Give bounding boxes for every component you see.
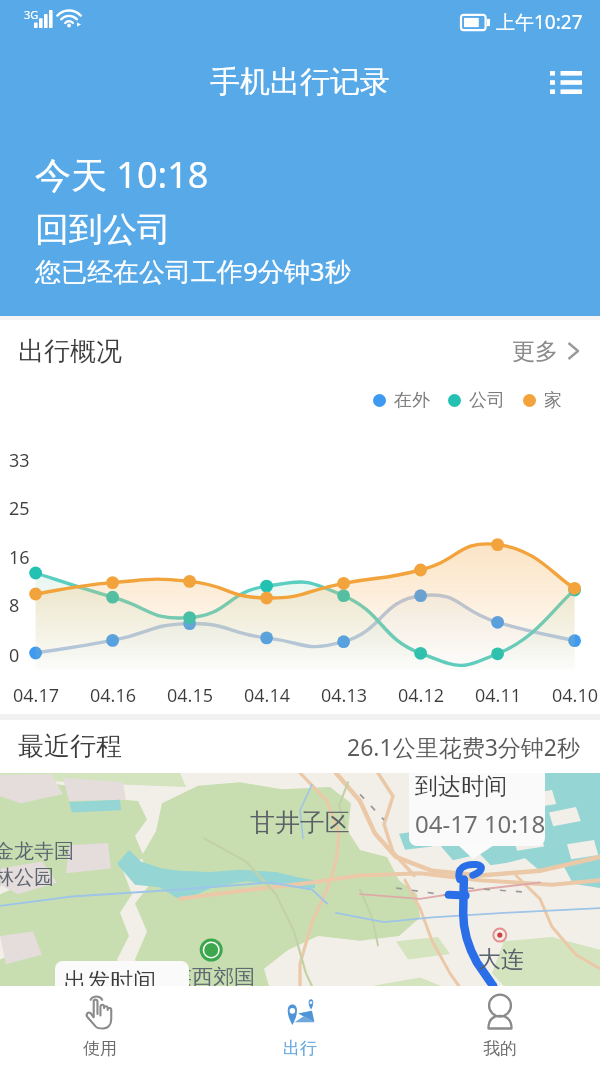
button[interactable]: Menu [540, 56, 592, 108]
button[interactable]: 最近行程 [0, 720, 600, 773]
staticText: 在外 [394, 389, 430, 412]
staticText: 04.17 [13, 683, 60, 708]
staticText: 金龙寺国 [0, 839, 74, 864]
staticText: 04.14 [244, 683, 291, 708]
staticText: 到达时间 [415, 773, 507, 801]
button[interactable]: 使用 [0, 986, 200, 1067]
staticText: 使用 [83, 1038, 117, 1059]
staticText: 家 [544, 389, 562, 412]
staticText: 出发时间 [64, 967, 156, 986]
staticText: 手机出行记录 [210, 63, 390, 101]
staticText: 16 [9, 545, 30, 570]
staticText: 我的 [483, 1038, 517, 1059]
staticText: 今天 10:18 [35, 150, 209, 199]
staticText: 33 [9, 448, 30, 473]
staticText: 回到公司 [35, 208, 171, 251]
staticText: 04-17 10:18 [415, 807, 545, 840]
staticText: 大连 [478, 945, 524, 974]
staticText: 0 [9, 643, 20, 668]
button[interactable]: 出行 [200, 986, 400, 1067]
button[interactable]: 出发时间 [55, 961, 189, 986]
staticText: 甘井子区 [250, 807, 350, 838]
button[interactable]: 到达时间 [409, 773, 545, 846]
staticText: 最近行程 [18, 730, 122, 763]
staticText: 04.10 [552, 683, 599, 708]
staticText: 25 [9, 496, 30, 521]
staticText: 8 [9, 593, 20, 618]
staticText: 04.15 [167, 683, 214, 708]
staticText: 04.12 [398, 683, 445, 708]
staticText: 出行概况 [18, 335, 122, 368]
staticText: 更多 [512, 337, 558, 366]
staticText: 04.16 [90, 683, 137, 708]
staticText: 04.11 [475, 683, 522, 708]
staticText: 林公园 [0, 865, 54, 890]
staticText: 公司 [469, 389, 505, 412]
staticText: 26.1公里花费3分钟2秒 [347, 731, 580, 762]
button[interactable]: 出行概况 [0, 320, 600, 382]
staticText: 3G [24, 7, 39, 22]
staticText: 04.13 [321, 683, 368, 708]
staticText: 出行 [283, 1038, 317, 1059]
staticText: 上午10:27 [496, 9, 583, 35]
staticText: 连西郊国 [171, 964, 255, 986]
button[interactable]: 我的 [400, 986, 600, 1067]
staticText: 您已经在公司工作9分钟3秒 [35, 253, 351, 289]
